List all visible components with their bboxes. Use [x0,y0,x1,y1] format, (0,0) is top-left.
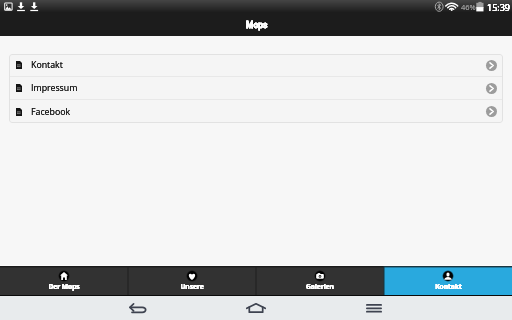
staticText: Facebook [31,106,71,118]
staticText: Kontakt [31,59,63,71]
staticText: 15:39 [487,1,510,13]
button[interactable]: Kontakt [9,54,503,77]
staticText: Unsere [180,282,204,291]
staticText: Mops [246,20,268,30]
staticText: Mops [246,20,268,30]
staticText: Kontakt [435,282,462,291]
staticText: Mops [246,20,268,30]
button[interactable]: Unsere [128,266,256,296]
staticText: Galerien [306,282,334,291]
staticText: Kontakt [31,59,63,71]
button[interactable]: Home [226,296,286,320]
staticText: Kontakt [31,59,63,71]
button[interactable]: Recent apps [344,296,404,320]
button[interactable]: Impressum [9,77,503,100]
staticText: Facebook [31,106,71,118]
staticText: Unsere [180,282,204,291]
staticText: 15:39 [487,1,510,13]
button[interactable]: Back [108,296,168,320]
button[interactable]: Facebook [9,100,503,123]
staticText: Facebook [31,106,71,118]
staticText: Galerien [306,282,334,291]
staticText: Galerien [306,282,334,291]
button[interactable]: Der Mops [0,266,128,296]
staticText: Der Mops [48,282,80,291]
staticText: Kontakt [435,282,462,291]
staticText: Kontakt [435,282,462,291]
button[interactable]: Galerien [256,266,384,296]
staticText: Impressum [31,82,78,94]
staticText: 46% [461,2,476,12]
staticText: Impressum [31,82,78,94]
staticText: 15:39 [487,1,510,13]
staticText: Der Mops [48,282,80,291]
staticText: Impressum [31,82,78,94]
staticText: Unsere [180,282,204,291]
button[interactable]: Kontakt [384,266,512,296]
staticText: Der Mops [48,282,80,291]
